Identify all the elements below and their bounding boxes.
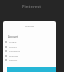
button[interactable]: Settings xyxy=(3,53,56,58)
staticText: Account xyxy=(8,35,19,39)
staticText: Display xyxy=(9,58,18,61)
staticText: Privacy xyxy=(9,45,17,48)
button[interactable]: Privacy xyxy=(3,44,56,49)
staticText: Settings xyxy=(9,54,19,57)
button[interactable]: Profile xyxy=(3,39,56,44)
staticText: Settings xyxy=(25,24,35,27)
button[interactable]: Payments xyxy=(3,48,56,53)
staticText: Payments xyxy=(9,49,21,52)
staticText: Profile xyxy=(9,40,17,43)
button[interactable]: Display xyxy=(3,57,56,62)
staticText: Pinterest xyxy=(22,4,42,10)
